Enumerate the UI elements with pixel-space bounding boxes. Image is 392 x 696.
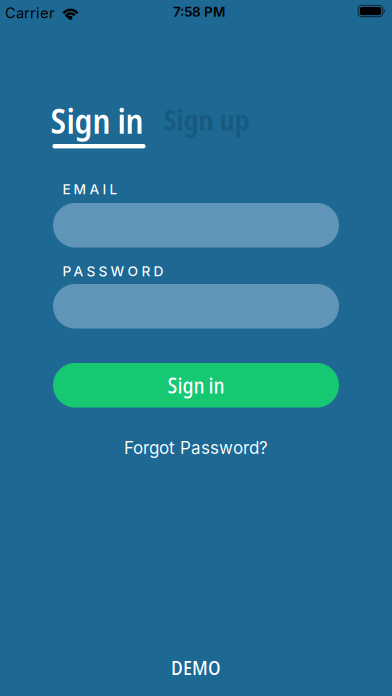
- staticText: EMAIL: [62, 181, 117, 198]
- staticText: Sign in: [167, 371, 224, 400]
- button[interactable]: Sign in: [53, 363, 339, 407]
- button[interactable]: Email: [53, 203, 339, 247]
- staticText: DEMO: [171, 653, 221, 681]
- staticText: Sign in: [50, 97, 143, 144]
- staticText: PASSWORD: [62, 263, 163, 280]
- button[interactable]: Sign up: [163, 101, 249, 139]
- button[interactable]: Sign in: [50, 97, 145, 148]
- staticText: 7:58 PM: [173, 4, 225, 20]
- staticText: Forgot Password?: [124, 437, 268, 458]
- button[interactable]: Password: [53, 284, 339, 328]
- staticText: Carrier: [5, 4, 55, 22]
- button[interactable]: DEMO: [171, 653, 221, 681]
- button[interactable]: Forgot Password?: [124, 437, 268, 458]
- staticText: Sign up: [163, 101, 249, 139]
